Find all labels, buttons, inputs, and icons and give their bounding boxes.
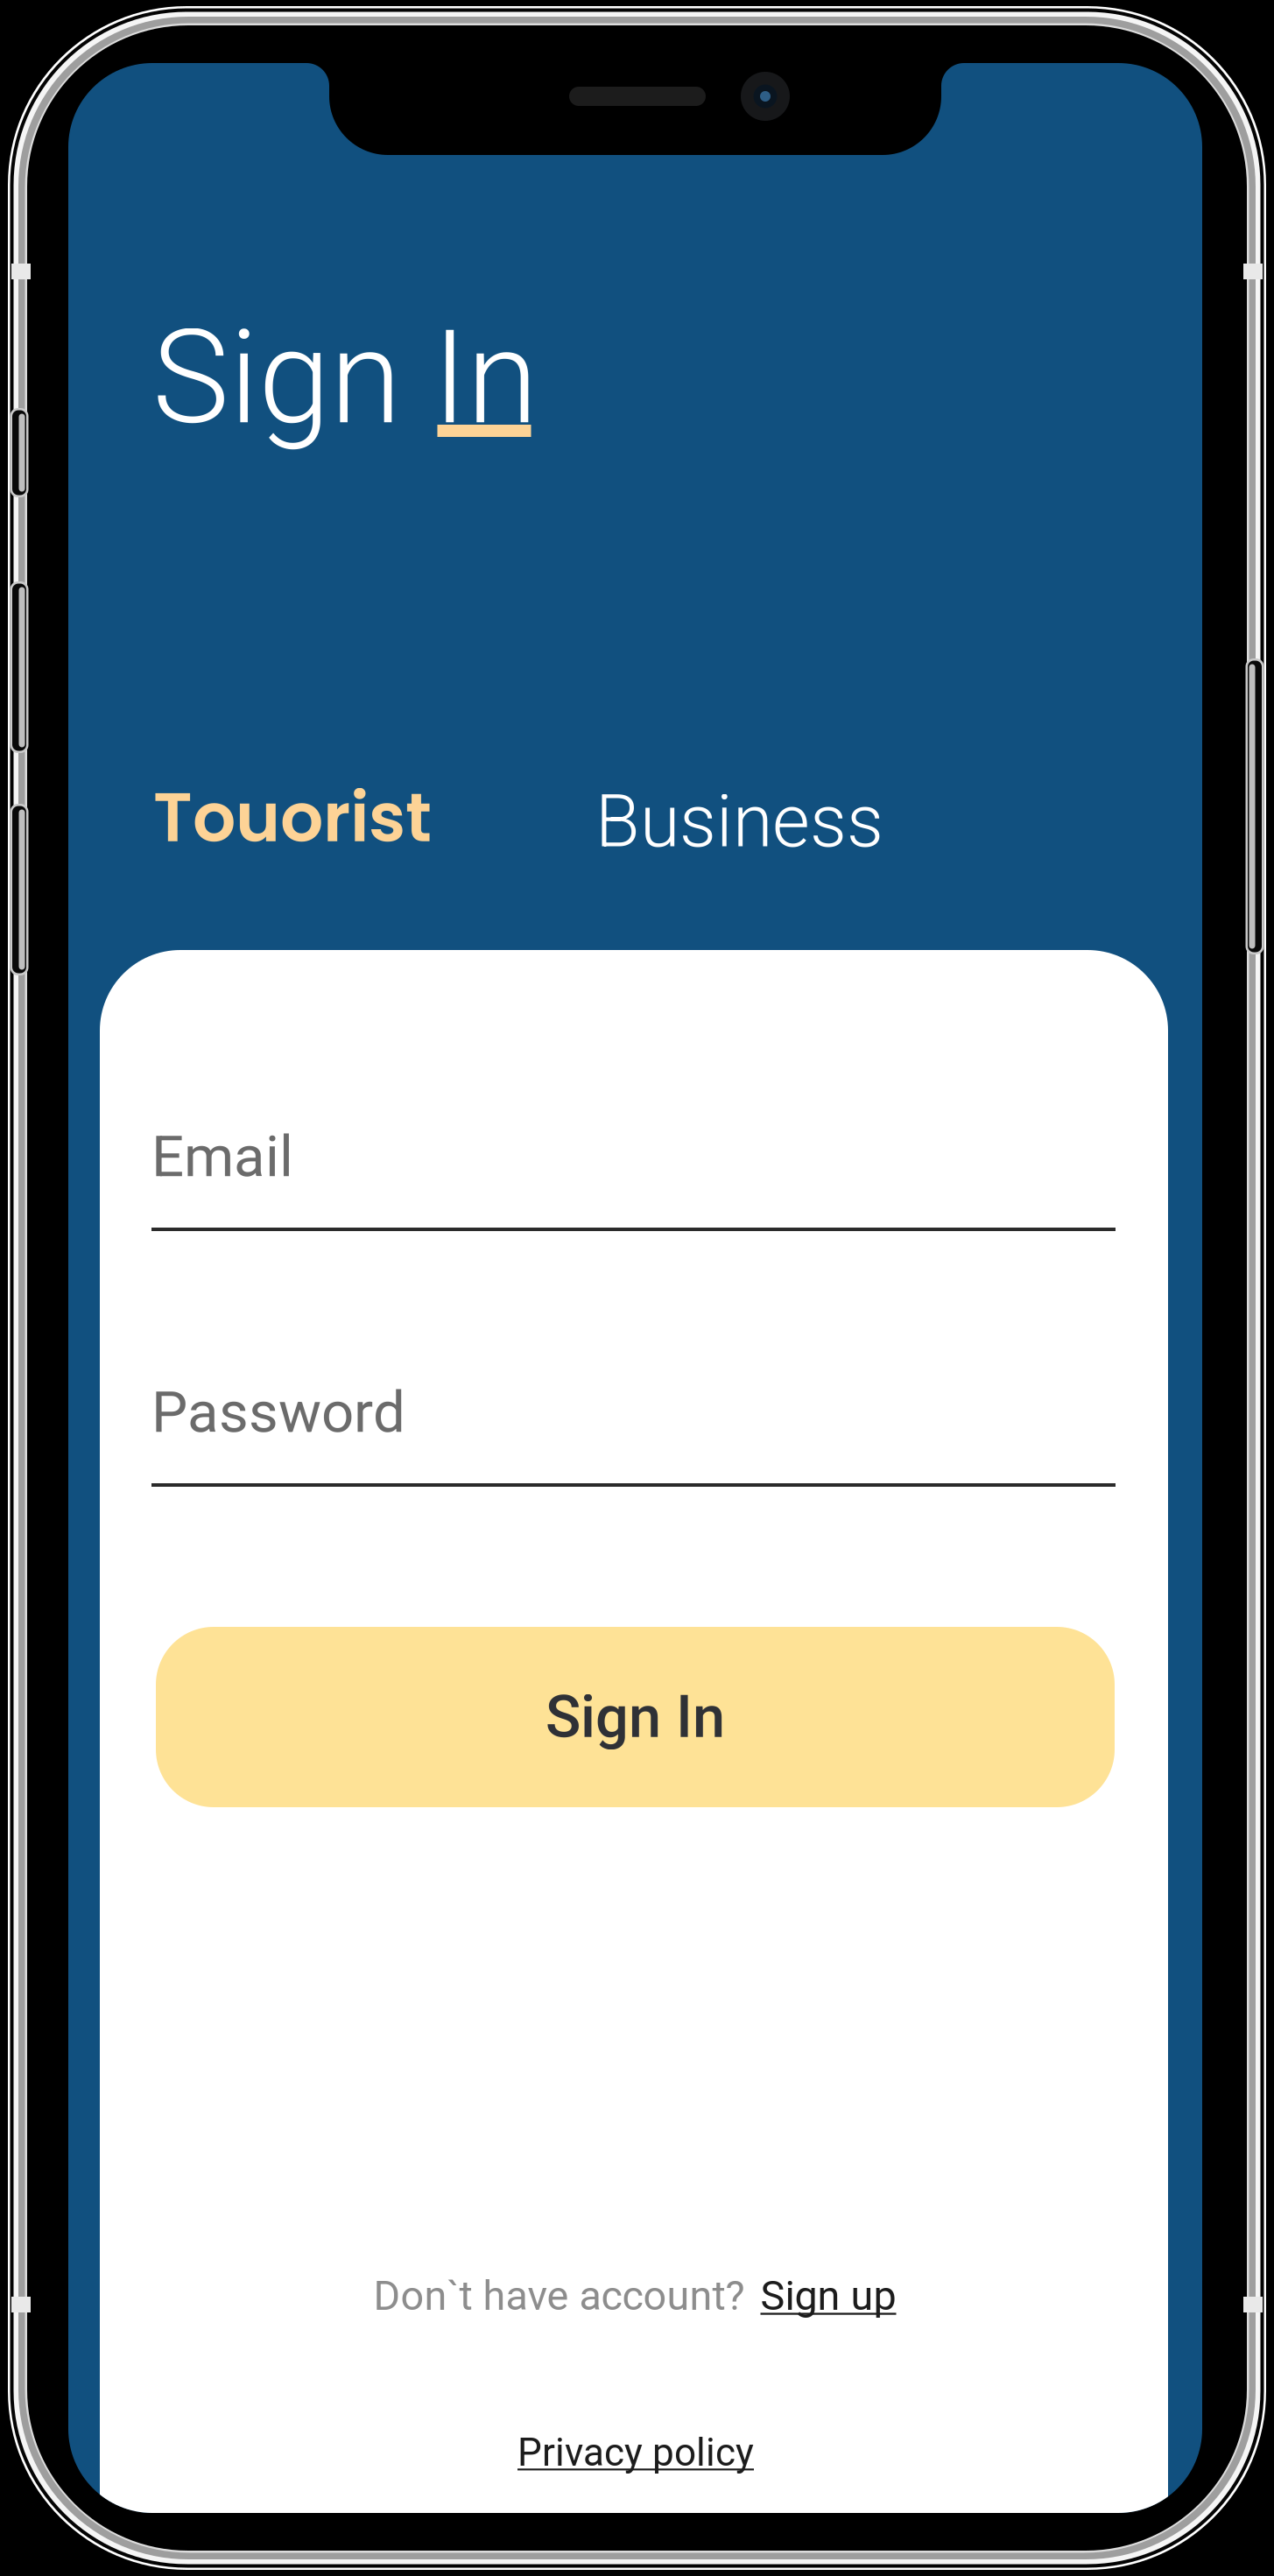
staticText: Email [151,1123,293,1190]
staticText: Sign up [760,2272,896,2320]
staticText: Sign In [545,1683,725,1751]
button[interactable]: Touorist [153,770,433,865]
button[interactable]: Sign up [760,2272,896,2320]
staticText: Password [151,1379,405,1446]
staticText: Don`t have account? [373,2272,745,2320]
button[interactable]: Privacy policy [373,2422,898,2483]
staticText: Business [595,779,883,864]
staticText: Touorist [153,770,432,865]
staticText: Sign In [152,302,538,454]
button[interactable]: Business [595,774,893,869]
staticText: Privacy policy [517,2430,754,2475]
button[interactable]: Sign In [156,1627,1115,1807]
